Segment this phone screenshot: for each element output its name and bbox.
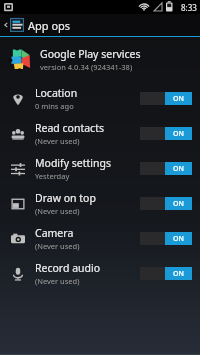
staticText: ON [173,164,184,174]
staticText: Location [35,86,78,100]
button[interactable]: Read contacts [0,116,200,151]
staticText: (Never used) [35,241,80,251]
button[interactable]: Toggle permission [140,127,192,140]
staticText: ON [173,199,184,209]
button[interactable]: Google Play services [0,37,200,81]
staticText: Modify settings [35,156,111,170]
button[interactable]: Toggle permission [140,267,192,280]
staticText: ON [173,94,184,104]
staticText: Read contacts [35,121,104,135]
staticText: Record audio [35,261,101,275]
button[interactable]: Toggle permission [140,162,192,175]
staticText: ON [173,129,184,139]
button[interactable]: Toggle permission [140,232,192,245]
staticText: (Never used) [35,136,80,146]
staticText: 8:33 [181,2,197,13]
staticText: ON [173,269,184,279]
button[interactable]: Toggle permission [140,197,192,210]
button[interactable]: Back [0,14,200,36]
staticText: 0 mins ago [35,101,74,111]
staticText: version 4.0.34 (924341-38) [40,62,133,72]
button[interactable]: Modify settings [0,151,200,186]
staticText: Google Play services [40,47,141,61]
button[interactable]: Record audio [0,256,200,291]
other: Back [2,14,10,36]
staticText: Yesterday [35,171,70,181]
staticText: Draw on top [35,191,96,205]
staticText: (Never used) [35,276,80,286]
staticText: ON [173,234,184,244]
button[interactable]: Camera [0,221,200,256]
button[interactable]: Toggle permission [140,92,192,105]
staticText: (Never used) [35,206,80,216]
button[interactable]: Draw on top [0,186,200,221]
staticText: App ops [28,18,71,33]
button[interactable]: Location [0,81,200,116]
staticText: Camera [35,226,74,240]
